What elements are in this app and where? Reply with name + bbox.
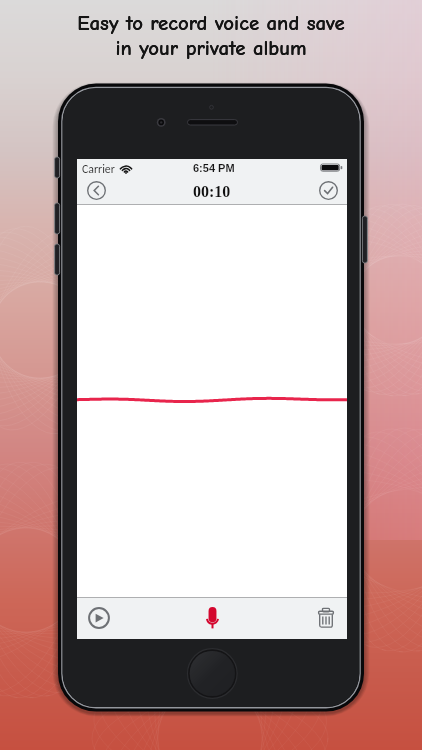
button[interactable]: Record (197, 603, 227, 633)
button[interactable]: Done (315, 177, 341, 203)
button[interactable]: Delete (311, 603, 341, 633)
button[interactable]: Play (84, 603, 114, 633)
staticText: 6:54 PM (193, 162, 235, 174)
staticText: Easy to record voice and save in your pr… (77, 11, 345, 60)
staticText: Easy to record voice and save in your pr… (77, 11, 345, 60)
staticText: 00:10 (193, 183, 231, 201)
staticText: Carrier (82, 162, 115, 176)
button[interactable]: Back (83, 177, 109, 203)
staticText: Easy to record voice and save in your pr… (77, 11, 345, 60)
